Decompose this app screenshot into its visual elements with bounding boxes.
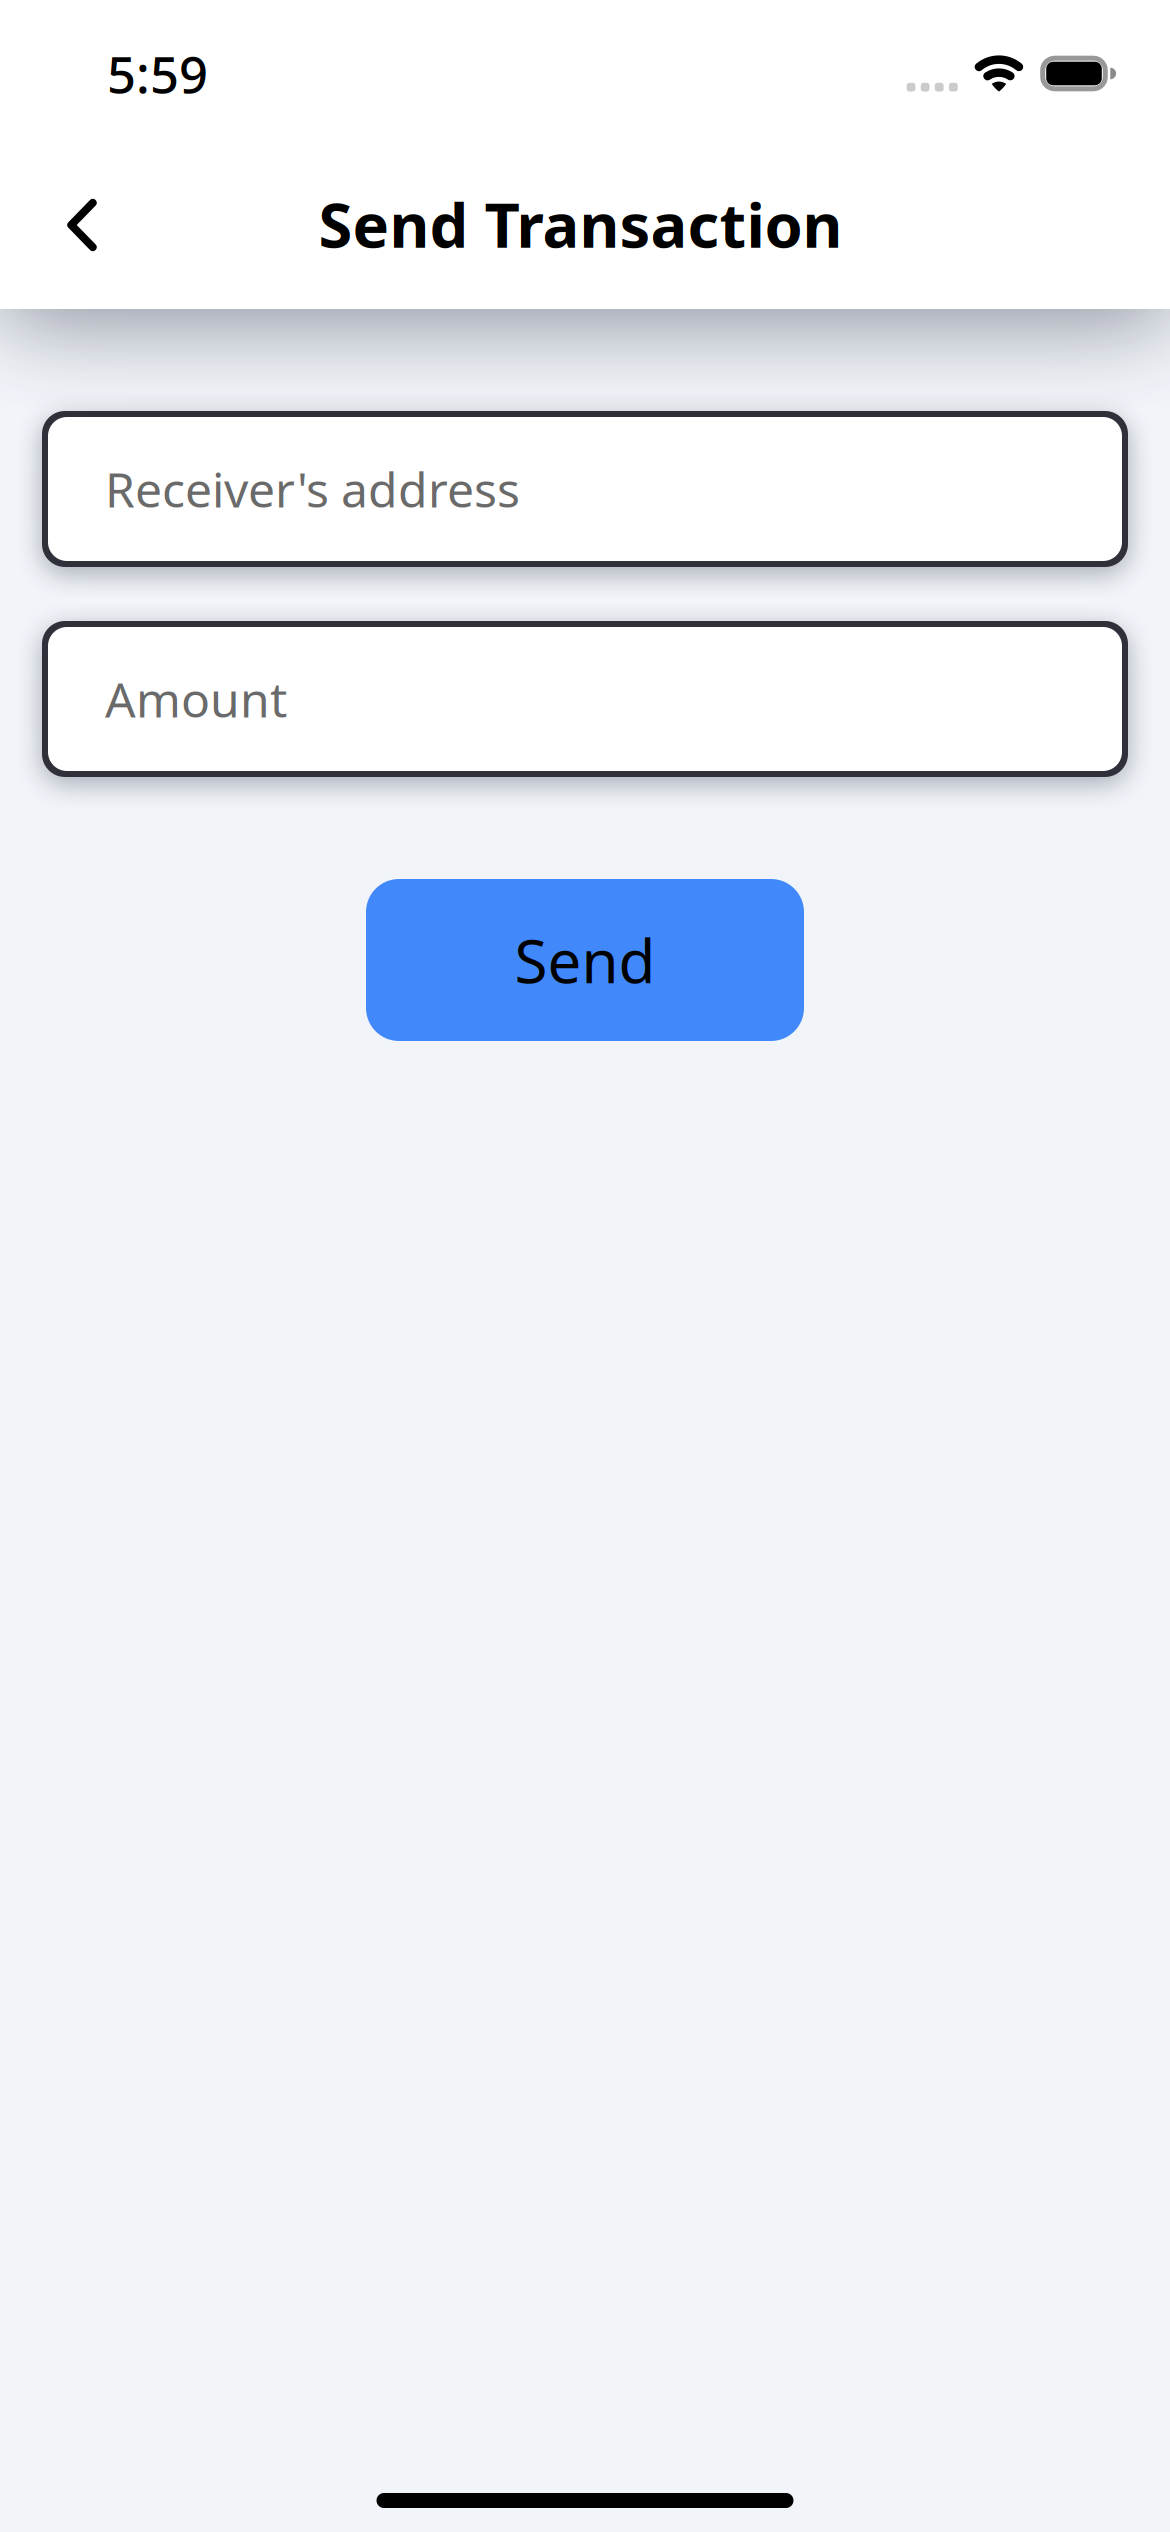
button[interactable]: Back <box>17 160 147 296</box>
staticText: Receiver's address <box>105 457 520 521</box>
staticText: Send Transaction <box>318 183 842 265</box>
staticText: 5:59 <box>107 40 208 107</box>
button[interactable]: Amount <box>42 621 1128 777</box>
button[interactable]: Send <box>366 879 804 1041</box>
button[interactable]: Receiver's address <box>42 411 1128 567</box>
staticText: Send <box>514 920 655 1000</box>
staticText: Amount <box>105 667 287 731</box>
